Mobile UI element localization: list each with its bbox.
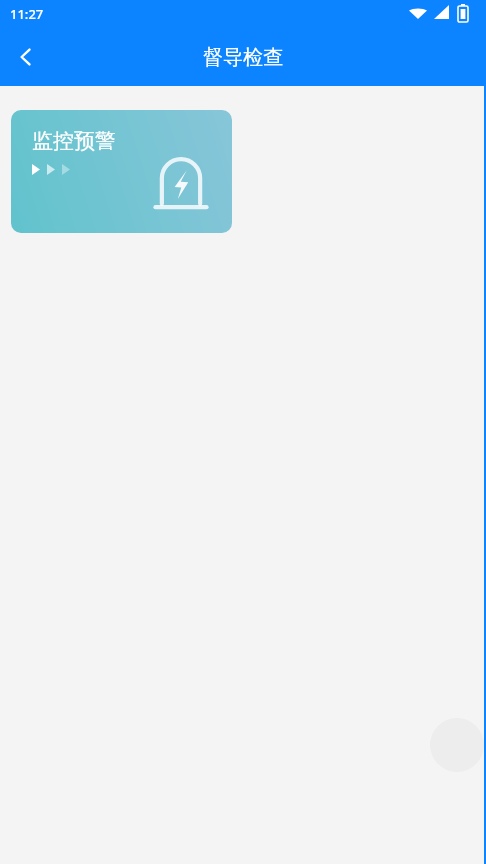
button[interactable]: 监控预警 bbox=[11, 110, 232, 233]
staticText: 督导检查 bbox=[203, 45, 283, 70]
staticText: 11:27 bbox=[10, 5, 44, 23]
button[interactable]: Back bbox=[0, 31, 52, 83]
staticText: 监控预警 bbox=[32, 128, 116, 154]
